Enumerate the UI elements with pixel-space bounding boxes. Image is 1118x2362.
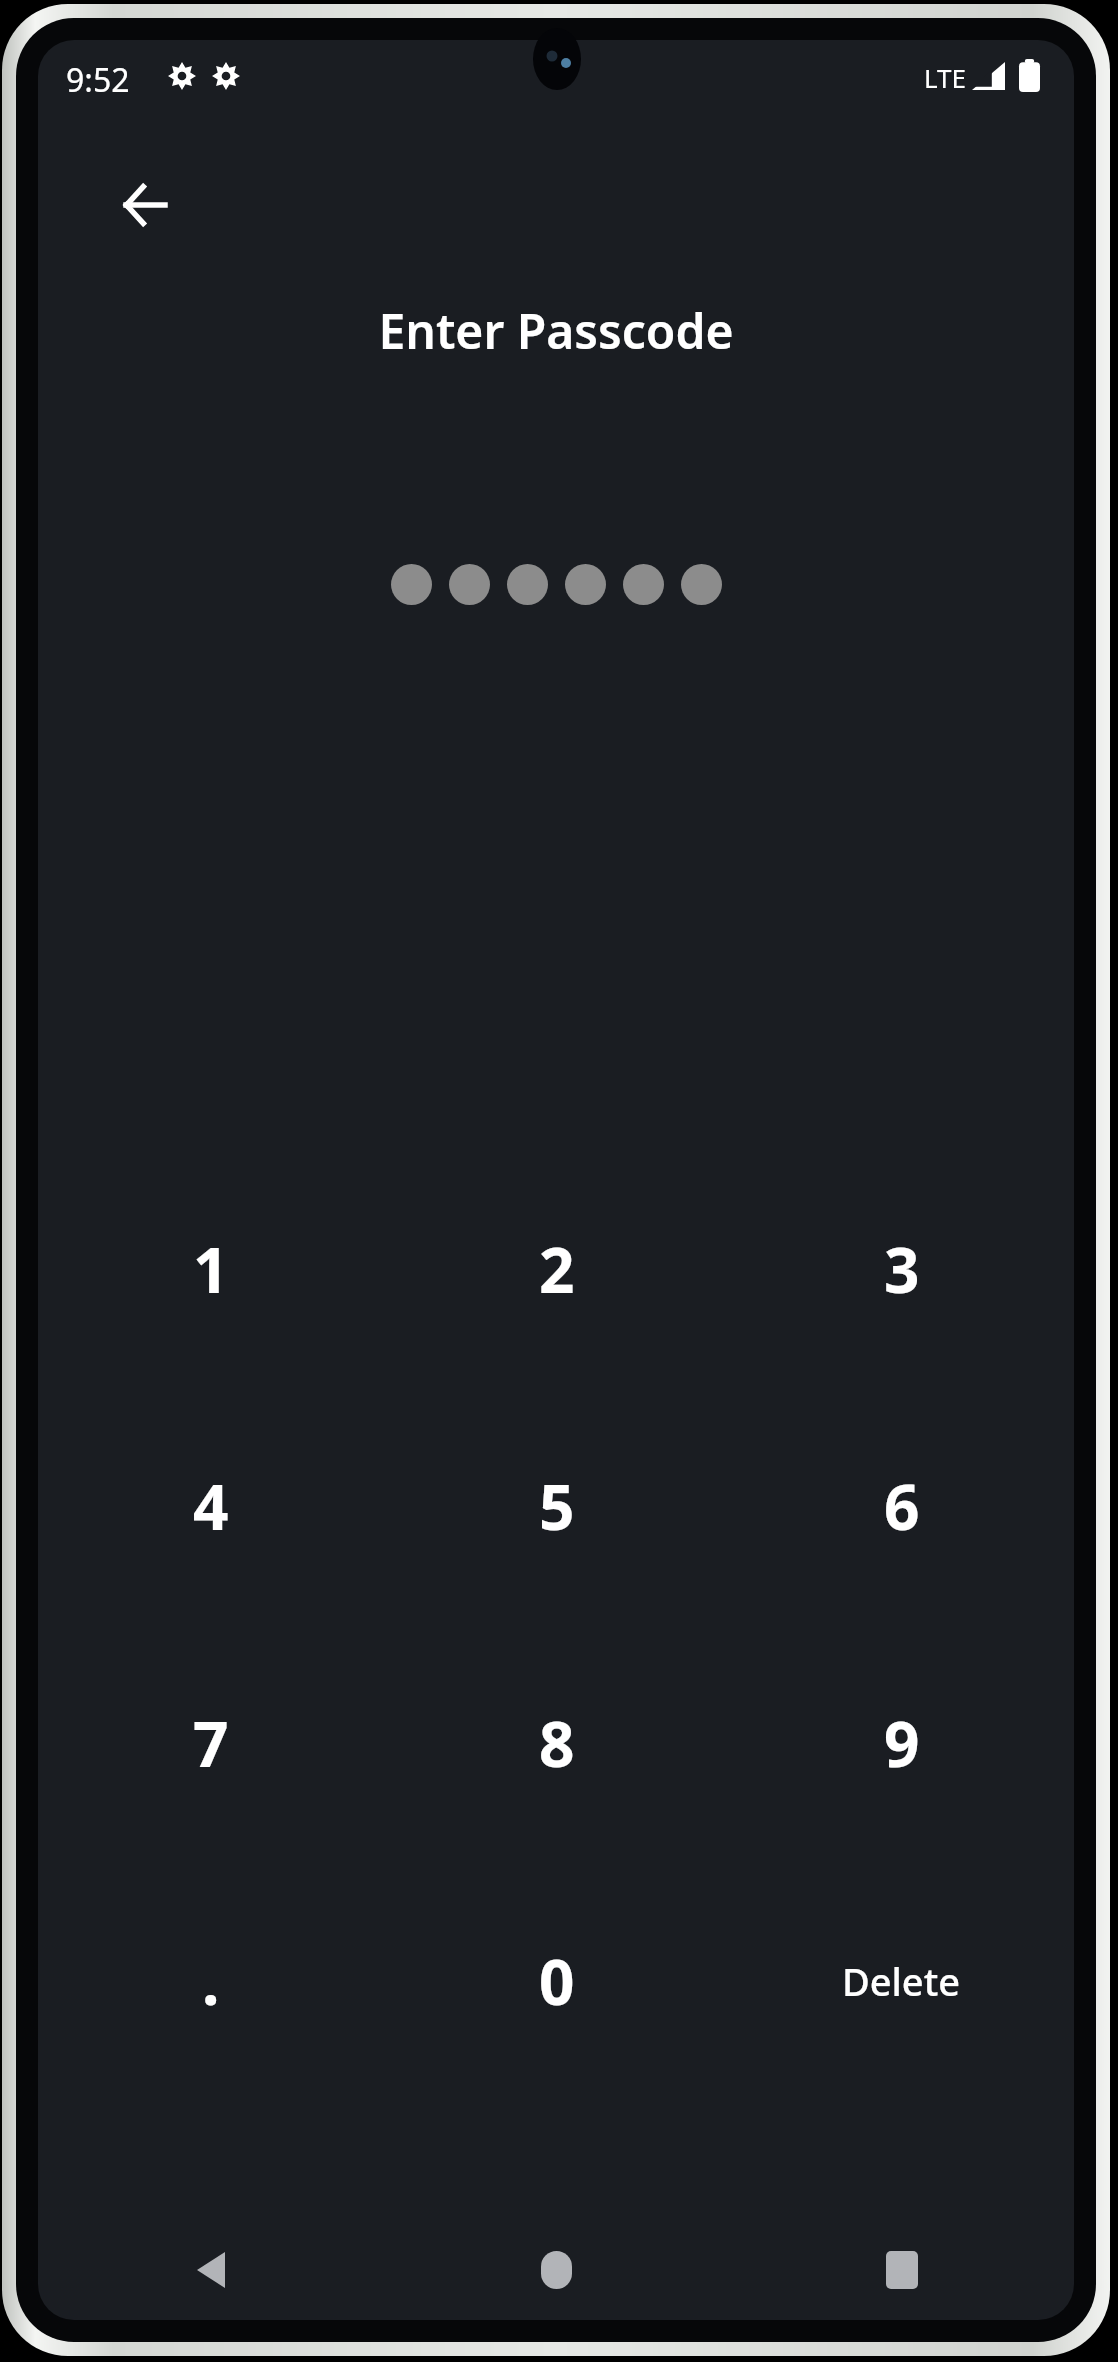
staticText: 5 (539, 1464, 575, 1548)
staticText: 8 (539, 1701, 575, 1785)
button[interactable]: 0 (384, 1862, 729, 2100)
staticText: Delete (842, 1955, 961, 2007)
staticText: 7 (193, 1701, 229, 1785)
button[interactable]: 7 (38, 1624, 384, 1862)
button[interactable]: 6 (729, 1387, 1074, 1624)
button[interactable]: 4 (38, 1387, 384, 1624)
staticText: 6 (884, 1464, 920, 1548)
button[interactable]: Recent apps (729, 2220, 1074, 2320)
button[interactable]: . (38, 1862, 384, 2100)
button[interactable]: 3 (729, 1150, 1074, 1387)
staticText: 3 (884, 1227, 920, 1311)
button[interactable]: 2 (384, 1150, 729, 1387)
button[interactable]: 8 (384, 1624, 729, 1862)
button[interactable]: 5 (384, 1387, 729, 1624)
staticText: 9 (884, 1701, 920, 1785)
staticText: 1 (193, 1227, 229, 1311)
button[interactable]: Back (38, 2220, 384, 2320)
staticText: LTE (924, 60, 967, 95)
staticText: 4 (193, 1464, 229, 1548)
staticText: 0 (539, 1939, 575, 2023)
button[interactable]: Delete (729, 1862, 1074, 2100)
staticText: 9:52 (66, 58, 130, 102)
staticText: . (202, 1939, 220, 2023)
button[interactable]: 9 (729, 1624, 1074, 1862)
button[interactable]: 1 (38, 1150, 384, 1387)
button[interactable]: Back (84, 145, 204, 265)
staticText: 2 (539, 1227, 575, 1311)
staticText: Enter Passcode (378, 298, 734, 363)
button[interactable]: Home (384, 2220, 729, 2320)
